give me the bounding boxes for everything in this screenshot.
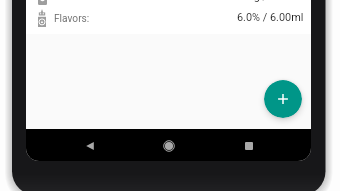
staticText: Flavors: [54,13,90,25]
button[interactable]: Back [78,134,102,158]
staticText: 3.0mg / 3.00ml [229,0,304,3]
button[interactable]: Home [157,134,181,158]
button[interactable]: Nicotine: [26,0,311,10]
button[interactable]: Recent apps [237,134,261,158]
button[interactable]: Add [264,80,302,118]
button[interactable]: Flavors: [26,9,311,31]
staticText: 6.0% / 6.00ml [237,11,304,24]
